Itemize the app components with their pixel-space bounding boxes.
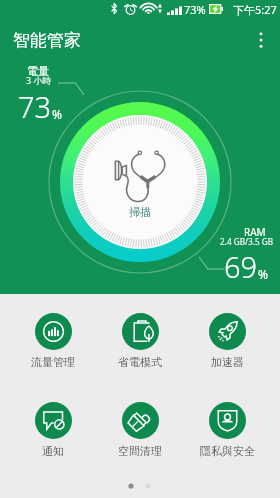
staticText: 下午5:27 xyxy=(233,2,277,17)
button[interactable]: More options xyxy=(249,28,273,52)
staticText: 隱私與安全 xyxy=(200,444,255,458)
button[interactable]: 掃描 Scan xyxy=(96,138,184,226)
staticText: 加速器 xyxy=(211,355,244,369)
button[interactable]: 通知 xyxy=(14,402,92,458)
button[interactable]: 空間清理 xyxy=(101,402,179,458)
staticText: 掃描 xyxy=(129,205,151,219)
staticText: 73 xyxy=(18,87,52,126)
staticText: 智能管家 xyxy=(13,30,81,51)
button[interactable]: 省電模式 xyxy=(101,313,179,369)
staticText: RAM xyxy=(244,225,266,239)
button[interactable]: 加速器 xyxy=(188,313,266,369)
staticText: 電量 xyxy=(27,64,49,78)
button[interactable]: 隱私與安全 xyxy=(188,402,266,458)
staticText: % xyxy=(52,106,62,122)
staticText: 空間清理 xyxy=(118,444,162,458)
staticText: 73% xyxy=(184,2,206,17)
staticText: 2.4 GB/3.5 GB xyxy=(220,236,273,247)
staticText: 通知 xyxy=(42,444,64,458)
staticText: 69 xyxy=(224,247,258,286)
button[interactable]: 流量管理 xyxy=(14,313,92,369)
staticText: % xyxy=(258,266,268,282)
staticText: 省電模式 xyxy=(118,355,162,369)
staticText: 流量管理 xyxy=(31,355,75,369)
staticText: 3 小時 xyxy=(26,74,52,86)
